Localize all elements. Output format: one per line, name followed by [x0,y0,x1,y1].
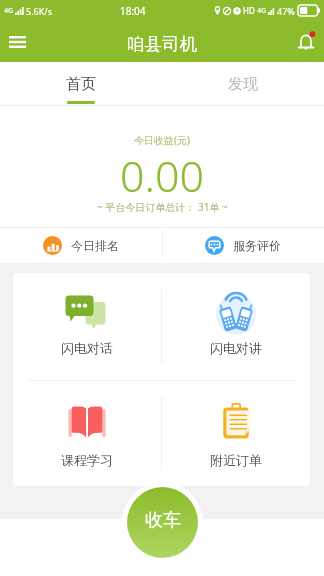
button[interactable]: 附近订单 [162,381,310,486]
button[interactable]: Notifications [286,20,324,61]
button[interactable]: 发现 [162,62,324,106]
button[interactable]: 首页 [0,62,162,106]
staticText: 0.00 [120,146,205,205]
staticText: 收车 [145,509,181,532]
button[interactable]: 收车 [127,487,198,558]
staticText: 闪电对话 [61,340,113,356]
button[interactable]: 闪电对话 [13,273,161,380]
staticText: 47% [277,5,295,17]
staticText: ~ 平台今日订单总计： 31单 ~ [97,200,228,214]
staticText: 4G [257,6,267,16]
staticText: 5.6K/s [26,5,52,17]
staticText: 发现 [228,75,258,94]
button[interactable]: Menu [0,21,35,62]
staticText: 服务评价 [233,238,281,253]
button[interactable]: 服务评价 [162,227,324,263]
staticText: 课程学习 [61,452,113,468]
button[interactable]: 今日排名 [0,227,162,263]
staticText: HD [243,5,255,16]
staticText: 4G [4,6,14,16]
button[interactable]: 闪电对讲 [162,273,310,380]
staticText: 18:04 [120,4,146,18]
staticText: 今日排名 [71,238,119,253]
staticText: 今日收益(元) [134,133,190,147]
button[interactable]: 课程学习 [13,381,161,486]
staticText: 闪电对讲 [210,340,262,356]
staticText: 咱县司机 [127,33,197,55]
staticText: 首页 [66,75,96,94]
staticText: 附近订单 [210,452,262,468]
